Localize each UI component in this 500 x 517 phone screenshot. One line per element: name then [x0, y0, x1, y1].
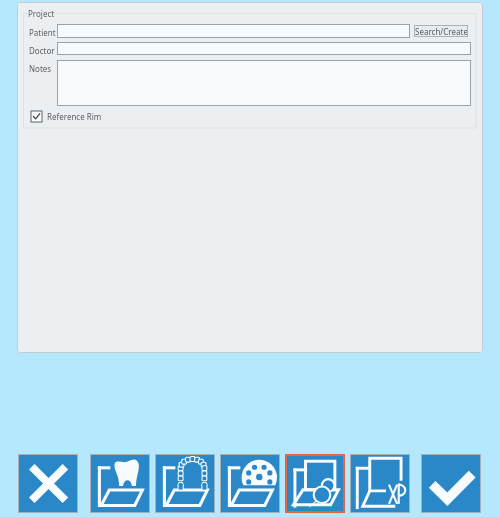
staticText: Project: [28, 8, 55, 19]
staticText: Doctor: [29, 45, 55, 56]
button[interactable]: Cancel: [19, 455, 77, 512]
button[interactable]: [57, 42, 471, 55]
button[interactable]: Scan tooth: [91, 455, 149, 512]
staticText: Search/Create: [415, 26, 468, 37]
button[interactable]: Search/Create: [414, 25, 468, 37]
button[interactable]: [57, 24, 410, 38]
button[interactable]: Confirm: [422, 455, 480, 512]
staticText: Notes: [29, 63, 52, 74]
button[interactable]: [57, 60, 471, 106]
button[interactable]: Reference Rim: [31, 111, 102, 122]
staticText: Reference Rim: [47, 111, 102, 122]
button[interactable]: Scan object: [287, 456, 343, 511]
button[interactable]: Scan plate: [221, 455, 279, 512]
button[interactable]: Scan arch: [156, 455, 214, 512]
button[interactable]: Export XP: [351, 455, 409, 512]
staticText: Patient: [29, 27, 56, 38]
